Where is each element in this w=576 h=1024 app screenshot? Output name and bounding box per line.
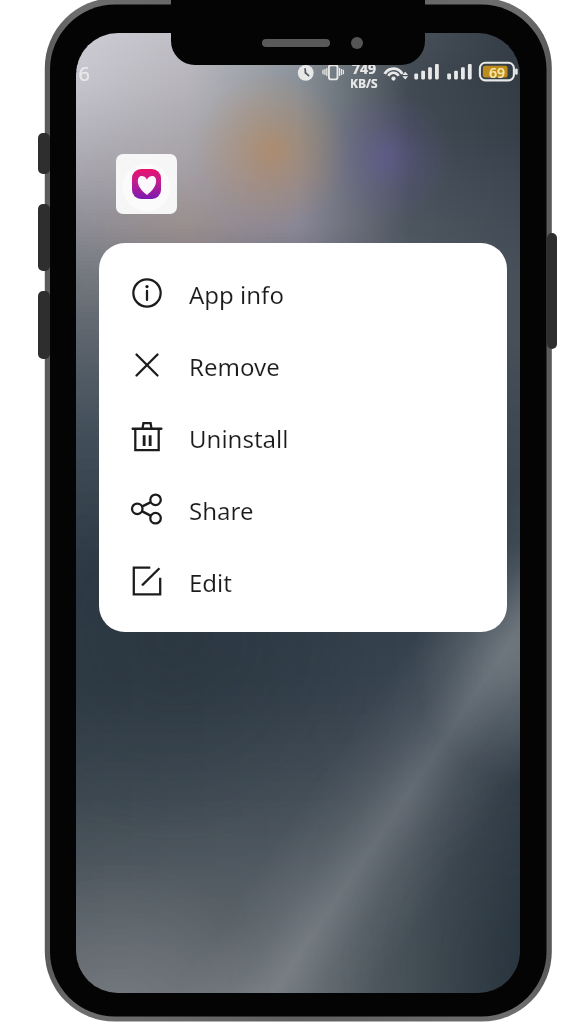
button[interactable]: Uninstall: [99, 401, 507, 473]
button[interactable]: App info: [99, 257, 507, 329]
button[interactable]: Open app: [116, 154, 177, 214]
button[interactable]: Edit: [99, 545, 507, 617]
button[interactable]: Remove: [99, 329, 507, 401]
staticText: KB/S: [350, 75, 378, 91]
staticText: 69: [489, 63, 506, 81]
staticText: Share: [189, 494, 254, 527]
staticText: App info: [189, 278, 284, 311]
button[interactable]: Share: [99, 473, 507, 545]
staticText: Uninstall: [189, 422, 289, 455]
staticText: 749: [352, 59, 377, 78]
staticText: Remove: [189, 350, 280, 383]
staticText: Edit: [189, 566, 232, 599]
staticText: 16: [76, 60, 90, 87]
